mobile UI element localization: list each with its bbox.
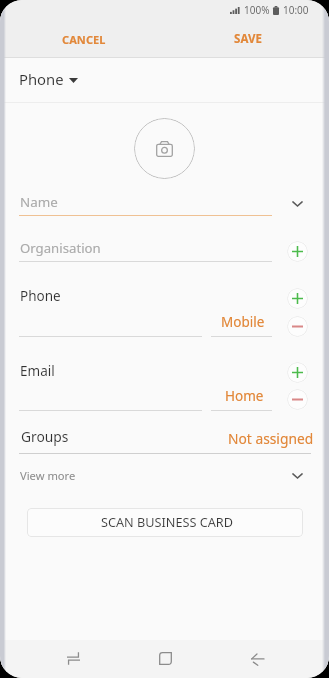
button[interactable] (211, 314, 272, 336)
button[interactable] (0, 424, 329, 453)
staticText: Not assigned (228, 429, 314, 448)
staticText: Phone (19, 69, 64, 89)
button[interactable]: Add phone number (283, 284, 311, 312)
staticText: Name (20, 193, 58, 211)
staticText: Organisation (20, 239, 101, 257)
button[interactable]: Add organisation (283, 237, 311, 265)
staticText: View more (20, 468, 76, 483)
button[interactable] (211, 388, 272, 410)
button[interactable]: Home (149, 642, 181, 674)
staticText: 10:00 (283, 3, 309, 17)
staticText: SCAN BUSINESS CARD (101, 513, 234, 530)
staticText: Email (20, 362, 55, 380)
staticText: 100% (244, 3, 270, 17)
staticText: SAVE (234, 31, 263, 47)
staticText: Phone (20, 287, 61, 305)
staticText: Groups (21, 427, 69, 446)
button[interactable] (0, 58, 329, 102)
button[interactable] (0, 22, 164, 57)
button[interactable] (0, 462, 329, 491)
button[interactable] (27, 508, 303, 537)
staticText: Mobile (221, 313, 265, 331)
button[interactable]: Back (241, 642, 273, 674)
button[interactable]: Expand name (283, 190, 311, 218)
button[interactable]: Add photo (134, 118, 195, 179)
button[interactable]: Remove email (283, 385, 311, 413)
staticText: CANCEL (62, 32, 106, 47)
button[interactable]: Add email (283, 358, 311, 386)
button[interactable]: Recent apps (57, 642, 89, 674)
button[interactable]: Show more fields (283, 462, 311, 490)
button[interactable]: Remove phone number (283, 312, 311, 340)
button[interactable] (165, 22, 329, 57)
staticText: Home (225, 387, 264, 405)
